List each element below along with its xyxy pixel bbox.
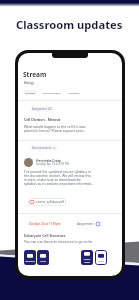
staticText: Announcement ⓘ: [32, 146, 56, 150]
staticText: What would happen to the cell if it was …: [24, 124, 86, 133]
staticText: Sunday, Apr 19 at 3:39 PM: [36, 162, 69, 166]
button[interactable]: Screen share: [81, 250, 93, 265]
staticText: Cell Division - Meiosis: [24, 117, 61, 122]
staticText: Classwork: [68, 91, 80, 94]
button[interactable]: course_syllabus.pdf: [28, 198, 66, 206]
button[interactable]: All Posts: [23, 90, 37, 95]
button[interactable]: Announcements: [40, 90, 63, 95]
staticText: Classroom updates: [16, 17, 123, 32]
staticText: Assignment #2: [32, 107, 52, 111]
staticText: Biology: [24, 81, 34, 85]
button[interactable]: Notes: [37, 250, 49, 265]
button[interactable]: Classwork: [66, 90, 82, 95]
staticText: Stream: [23, 70, 47, 79]
button[interactable]: Classroom: [24, 250, 36, 265]
staticText: I've posted the updated course syllabus …: [24, 169, 94, 186]
staticText: Due Apr 20 at 11:59pm: [29, 222, 61, 226]
staticText: All Posts: [25, 91, 35, 94]
button[interactable]: Assignment #2: [30, 106, 54, 112]
staticText: Notes: [40, 260, 46, 263]
staticText: Classroom: [25, 260, 35, 263]
staticText: Announcements: [42, 91, 61, 94]
staticText: Assignment: [77, 222, 94, 226]
button[interactable]: Peers: [95, 250, 107, 265]
staticText: Peers: [98, 260, 104, 263]
staticText: You can use these as resources to go to …: [24, 239, 93, 244]
staticText: course_syllabus.pdf: [36, 200, 64, 204]
staticText: Eukaryote Cell Structure: [24, 233, 66, 238]
button[interactable]: Announcement ⓘ: [30, 145, 58, 151]
staticText: Henrietta Craig: [36, 158, 61, 162]
staticText: Screen share: [81, 258, 93, 264]
